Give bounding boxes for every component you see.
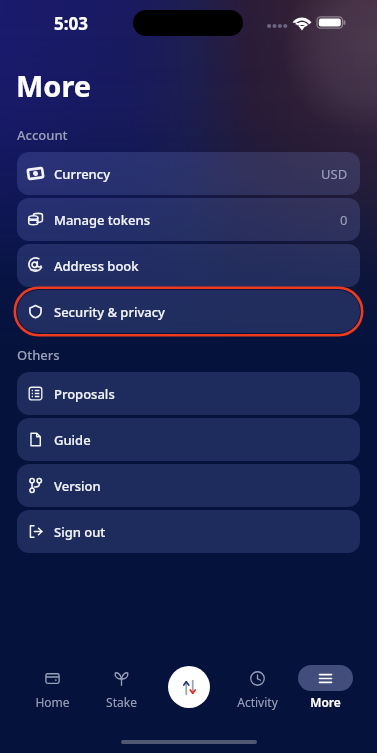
staticText: 0: [340, 211, 348, 229]
staticText: Activity: [237, 694, 278, 710]
staticText: Stake: [106, 694, 137, 710]
button[interactable]: Security & privacy: [17, 290, 360, 333]
staticText: Others: [17, 346, 60, 364]
button[interactable]: Swap: [168, 666, 210, 708]
button[interactable]: Address book: [17, 244, 360, 287]
button[interactable]: Currency: [17, 152, 360, 195]
staticText: Proposals: [54, 385, 115, 403]
button[interactable]: Version: [17, 464, 360, 507]
staticText: Account: [17, 126, 68, 144]
button[interactable]: Manage tokens: [17, 198, 360, 241]
staticText: Guide: [54, 431, 91, 449]
staticText: USD: [321, 165, 348, 183]
button[interactable]: Stake: [87, 665, 155, 727]
button[interactable]: Home: [18, 665, 87, 727]
staticText: More: [16, 66, 92, 105]
button[interactable]: Activity: [223, 665, 291, 727]
staticText: Manage tokens: [54, 211, 150, 229]
staticText: 5:03: [54, 12, 88, 35]
button[interactable]: Proposals: [17, 372, 360, 415]
button[interactable]: Guide: [17, 418, 360, 461]
staticText: Currency: [54, 165, 111, 183]
staticText: Sign out: [54, 523, 106, 541]
button[interactable]: Sign out: [17, 510, 360, 553]
staticText: Address book: [54, 257, 139, 275]
staticText: Version: [54, 477, 101, 495]
button[interactable]: More: [291, 665, 359, 727]
staticText: Home: [35, 694, 70, 710]
staticText: Security & privacy: [54, 303, 165, 321]
staticText: More: [310, 694, 341, 710]
